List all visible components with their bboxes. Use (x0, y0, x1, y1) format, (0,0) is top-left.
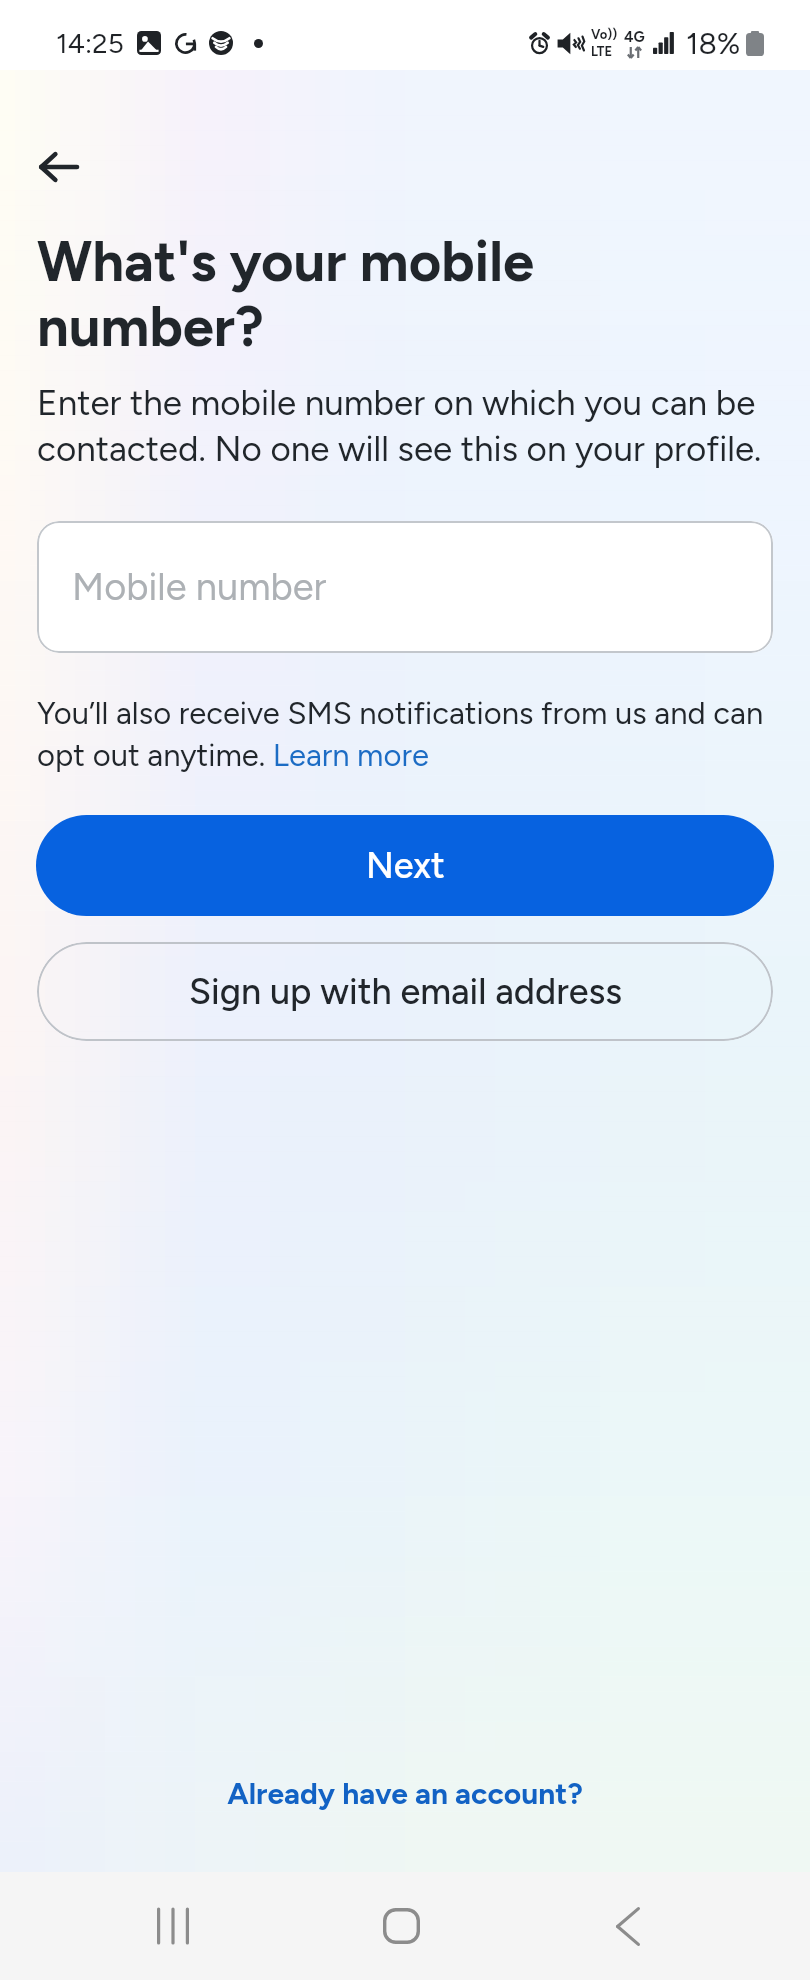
button[interactable]: Recent apps (0, 1872, 273, 1980)
staticText: Next (366, 844, 445, 887)
staticText: Sign up with email address (189, 970, 622, 1013)
button[interactable]: Back (20, 129, 96, 205)
button[interactable]: Next (36, 815, 774, 916)
staticText: Already have an account? (227, 1775, 583, 1811)
staticText: What's your mobile number? (37, 228, 755, 360)
button[interactable]: Sign up with email address (37, 942, 773, 1041)
staticText: 14:25 (56, 26, 124, 60)
staticText: LTE (591, 44, 613, 60)
button[interactable]: Home (273, 1872, 529, 1980)
staticText: 4G (624, 28, 645, 46)
staticText: Mobile number (72, 564, 327, 610)
staticText: Enter the mobile number on which you can… (37, 382, 780, 470)
button[interactable]: Already have an account? (0, 1755, 810, 1831)
button[interactable]: Back (529, 1872, 810, 1980)
staticText: You’ll also receive SMS notifications fr… (37, 695, 780, 774)
staticText: Vo)) (591, 27, 618, 43)
staticText: 18% (686, 25, 741, 61)
button[interactable]: Mobile number (37, 521, 773, 653)
